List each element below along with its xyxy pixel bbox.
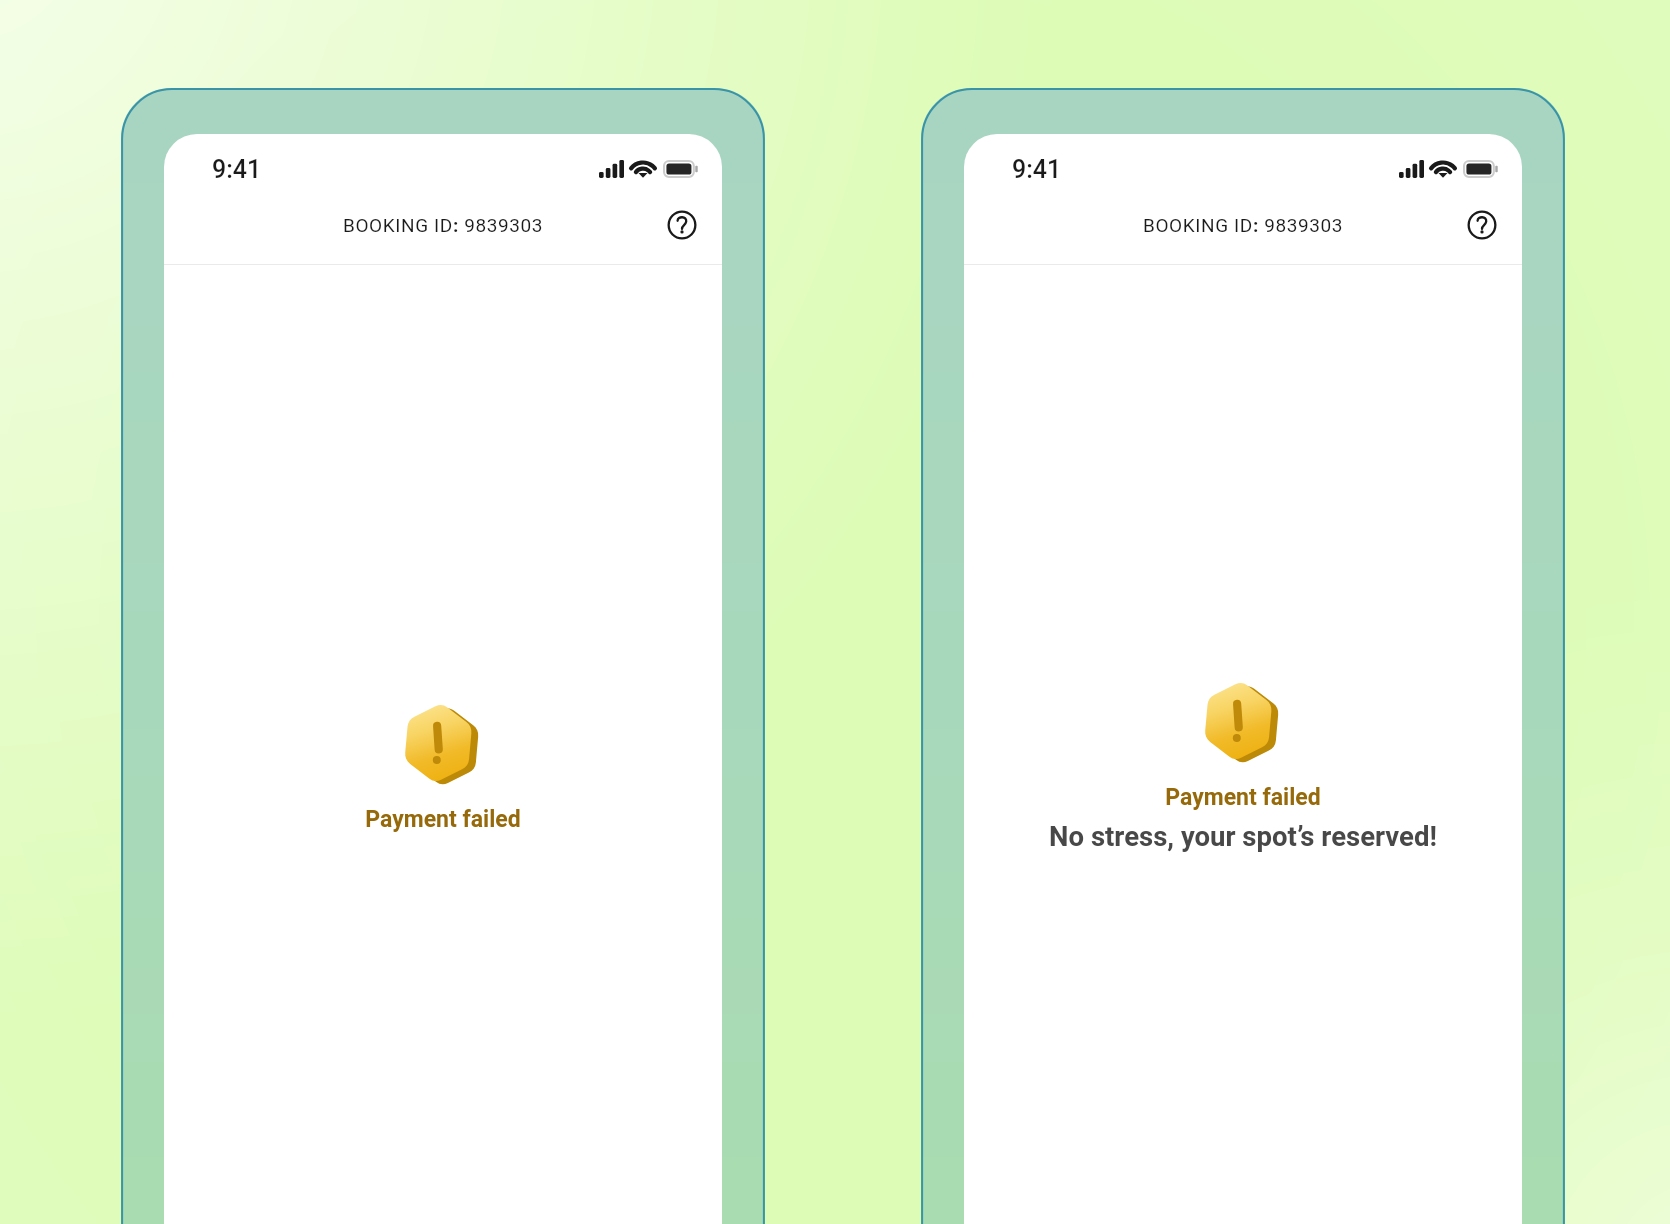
staticText: No stress, your spot’s reserved! [1049, 820, 1437, 852]
staticText: 9:41 [212, 155, 262, 184]
staticText: Payment failed [1165, 784, 1321, 811]
other: Warning [1195, 681, 1277, 761]
staticText: BOOKING ID: 9839303 [1143, 214, 1344, 236]
button[interactable]: Help [662, 205, 702, 245]
staticText: BOOKING ID: 9839303 [343, 214, 544, 236]
staticText: 9:41 [1012, 155, 1062, 184]
staticText: Payment failed [365, 806, 521, 833]
button[interactable]: Help [1462, 205, 1502, 245]
other: Warning [395, 703, 477, 783]
